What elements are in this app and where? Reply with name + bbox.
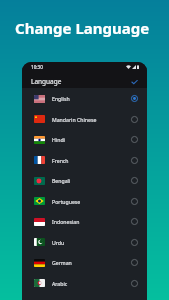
button[interactable]: Urdu <box>22 232 147 252</box>
staticText: Mandarin Chinese <box>52 116 97 123</box>
button[interactable]: Mandarin Chinese <box>22 109 147 129</box>
button[interactable]: German <box>22 252 147 273</box>
button[interactable]: Portuguese <box>22 191 147 211</box>
button[interactable]: French <box>22 150 147 170</box>
button[interactable]: Hindi <box>22 129 147 150</box>
staticText: Indonesian <box>52 218 80 225</box>
staticText: Portuguese <box>52 198 81 205</box>
button[interactable]: Bengali <box>22 170 147 191</box>
staticText: German <box>52 259 72 266</box>
staticText: Hindi <box>52 136 65 143</box>
staticText: Urdu <box>52 239 65 246</box>
staticText: Bengali <box>52 177 71 184</box>
button[interactable]: Confirm selection <box>128 75 140 87</box>
button[interactable]: Indonesian <box>22 211 147 232</box>
staticText: 10:30 <box>31 64 43 70</box>
staticText: French <box>52 157 69 164</box>
staticText: Change Language <box>15 18 150 38</box>
button[interactable]: Arabic <box>22 273 147 293</box>
staticText: Arabic <box>52 280 68 287</box>
button[interactable]: English <box>22 88 147 109</box>
staticText: English <box>52 95 70 102</box>
staticText: Language <box>31 77 62 86</box>
